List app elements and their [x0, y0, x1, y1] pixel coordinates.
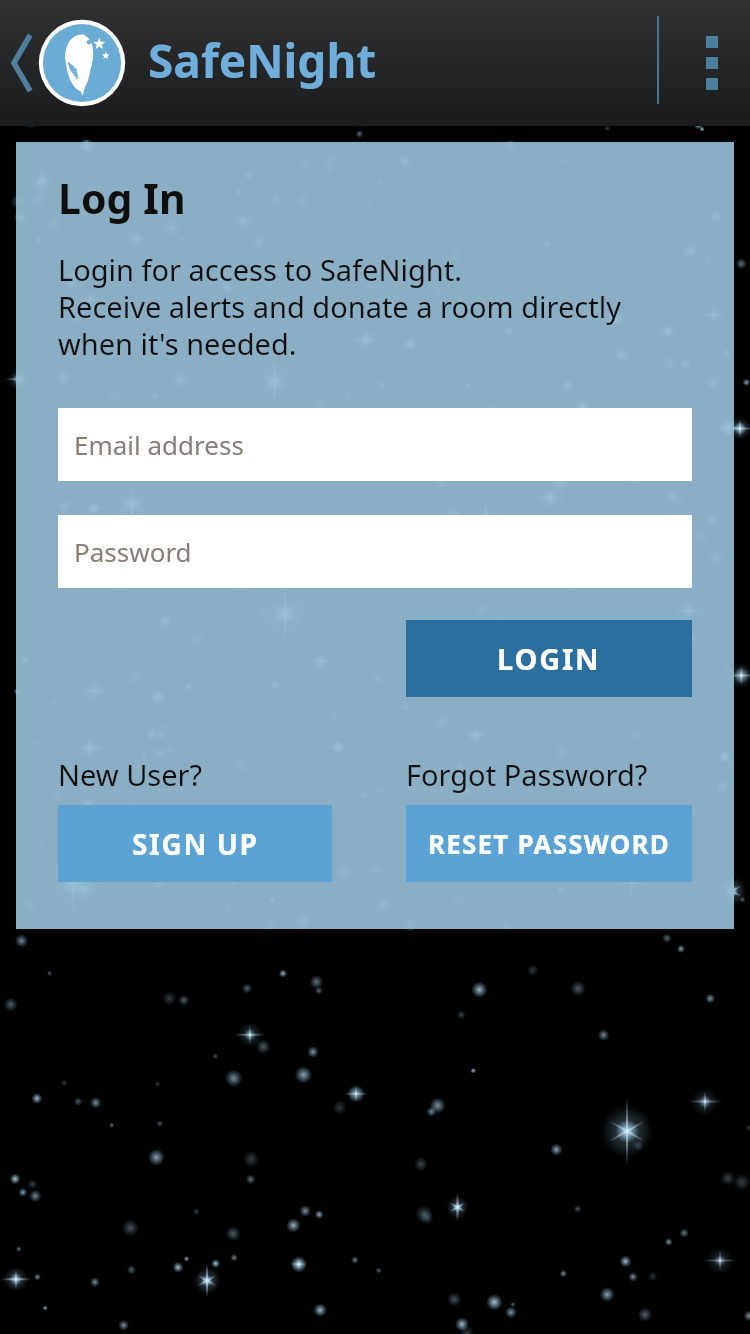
button[interactable]: Email address [58, 408, 692, 481]
button[interactable]: SIGN UP [58, 805, 332, 882]
staticText: Forgot Password? [406, 755, 648, 794]
staticText: SIGN UP [132, 825, 259, 863]
staticText: New User? [58, 755, 203, 794]
button[interactable]: RESET PASSWORD [406, 805, 692, 882]
staticText: Log In [58, 170, 186, 226]
staticText: SafeNight [148, 29, 377, 92]
button[interactable]: Back [0, 0, 46, 126]
staticText: Login for access to SafeNight. Receive a… [58, 250, 621, 364]
staticText: Email address [74, 427, 244, 462]
button[interactable]: More options [674, 0, 750, 126]
button[interactable]: Password [58, 515, 692, 588]
staticText: LOGIN [497, 639, 601, 678]
staticText: RESET PASSWORD [428, 826, 671, 861]
staticText: Password [74, 534, 192, 569]
button[interactable]: LOGIN [406, 620, 692, 697]
